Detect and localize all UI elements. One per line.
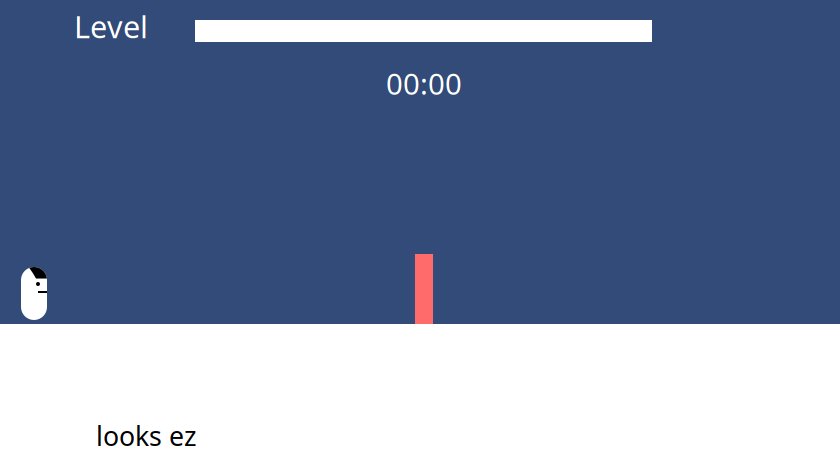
- staticText: Level: [74, 6, 148, 47]
- button[interactable]: Jump: [0, 0, 840, 324]
- staticText: looks ez: [96, 418, 197, 453]
- staticText: 00:00: [386, 64, 462, 103]
